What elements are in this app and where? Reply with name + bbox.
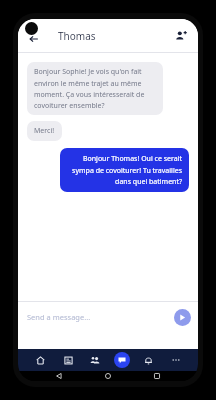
button[interactable]: More <box>167 351 185 369</box>
button[interactable]: Back <box>28 33 40 45</box>
button[interactable]: Send a message... <box>27 306 174 328</box>
staticText: Merci! <box>34 126 55 136</box>
button[interactable]: Home <box>31 351 49 369</box>
button[interactable]: Send <box>174 309 191 326</box>
button[interactable]: Messages <box>114 352 130 368</box>
button[interactable]: Bonjour Thomas! Oui ce serait sympa de c… <box>60 148 189 192</box>
button[interactable]: Bonjour Sophie! Je vois qu'on fait envir… <box>27 62 163 115</box>
button[interactable]: Home <box>101 371 115 381</box>
staticText: Bonjour Thomas! Oui ce serait sympa de c… <box>67 154 182 186</box>
button[interactable]: Notifications <box>139 351 157 369</box>
button[interactable]: Contact profile <box>170 25 192 47</box>
staticText: Send a message... <box>27 312 91 322</box>
button[interactable]: News <box>59 351 77 369</box>
button[interactable]: Merci! <box>27 121 62 141</box>
staticText: Thomas <box>58 29 96 43</box>
staticText: Bonjour Sophie! Je vois qu'on fait envir… <box>34 67 156 110</box>
button[interactable]: Community <box>86 351 104 369</box>
button[interactable]: Recent apps <box>150 371 164 381</box>
button[interactable]: Back <box>52 371 66 381</box>
